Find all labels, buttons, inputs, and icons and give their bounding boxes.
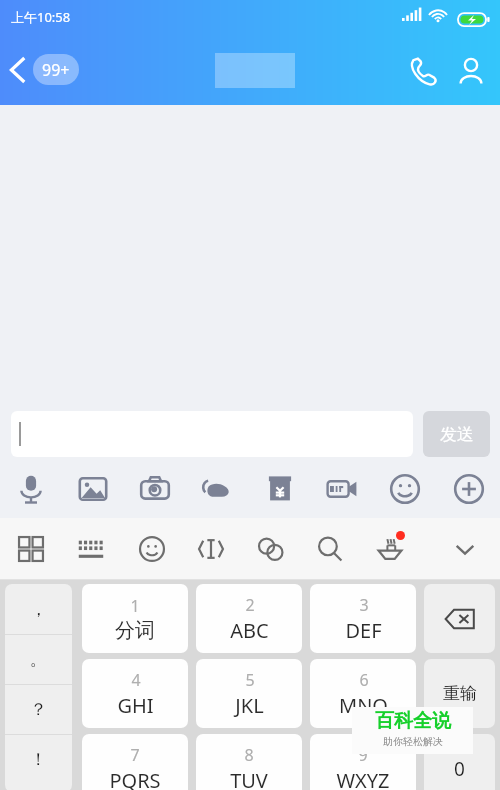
staticText: GHI (117, 692, 154, 719)
button[interactable]: Emoji (131, 528, 173, 570)
staticText: 5 (245, 669, 255, 691)
button[interactable]: Contact info (452, 52, 490, 90)
staticText: 百科全说 (375, 709, 451, 733)
staticText: WXYZ (336, 767, 390, 790)
staticText: 0 (454, 756, 465, 782)
button[interactable]: Voice message (10, 468, 52, 510)
button[interactable]: Search (309, 528, 351, 570)
button[interactable]: Keyboard layout (70, 528, 112, 570)
staticText: 重输 (443, 683, 477, 704)
button[interactable]: 4 (82, 659, 188, 728)
staticText: 1 (130, 595, 140, 617)
staticText: 3 (359, 594, 369, 616)
staticText: 99+ (42, 59, 70, 81)
button[interactable]: 8 (196, 734, 302, 790)
button[interactable]: 9 (310, 734, 416, 790)
button[interactable]: ， (5, 584, 72, 634)
button[interactable]: Red packet (259, 468, 301, 510)
button[interactable]: Camera (134, 468, 176, 510)
button[interactable]: Skin (369, 528, 411, 570)
button[interactable]: 3 (310, 584, 416, 653)
button[interactable]: 2 (196, 584, 302, 653)
staticText: 8 (244, 744, 254, 766)
button[interactable]: Hand gesture (196, 468, 238, 510)
staticText: ！ (30, 749, 47, 770)
staticText: ？ (30, 699, 47, 720)
button[interactable]: Text editing (190, 528, 232, 570)
staticText: 4 (131, 669, 141, 691)
staticText: ， (30, 599, 47, 620)
button[interactable]: 0 (424, 734, 495, 790)
button[interactable]: 。 (5, 634, 72, 684)
staticText: JKL (235, 692, 264, 719)
button[interactable]: Call (404, 52, 444, 92)
button[interactable]: Backspace (424, 584, 495, 653)
button[interactable]: 99+ (33, 54, 79, 85)
button[interactable]: 7 (82, 734, 188, 790)
button[interactable]: 5 (196, 659, 302, 728)
button[interactable]: More (448, 468, 490, 510)
button[interactable]: ！ (5, 734, 72, 784)
button[interactable]: Back (2, 50, 38, 90)
staticText: 助你轻松解决 (383, 735, 443, 748)
button[interactable]: 1 (82, 584, 188, 653)
staticText: 。 (30, 649, 47, 670)
staticText: 6 (359, 669, 369, 691)
button[interactable] (11, 411, 413, 457)
staticText: 2 (245, 594, 255, 616)
staticText: 分词 (115, 618, 155, 643)
button[interactable]: Emoji (384, 468, 426, 510)
button[interactable]: GIF (321, 468, 363, 510)
button[interactable]: Clipboard (250, 528, 292, 570)
staticText: 9 (358, 744, 368, 766)
button[interactable]: Apps (10, 528, 52, 570)
button[interactable]: ？ (5, 684, 72, 734)
staticText: MNO (339, 692, 388, 719)
button[interactable]: Hide keyboard (444, 528, 486, 570)
staticText: ABC (230, 617, 269, 644)
staticText: DEF (345, 617, 382, 644)
staticText: TUV (230, 767, 268, 790)
button[interactable]: 6 (310, 659, 416, 728)
staticText: PQRS (109, 767, 161, 790)
button[interactable]: 发送 (423, 411, 490, 457)
button[interactable]: Photos (72, 468, 114, 510)
staticText: 上午10:58 (11, 8, 71, 26)
staticText: 发送 (440, 424, 474, 445)
staticText: 7 (130, 744, 140, 766)
button[interactable]: 重输 (424, 659, 495, 728)
